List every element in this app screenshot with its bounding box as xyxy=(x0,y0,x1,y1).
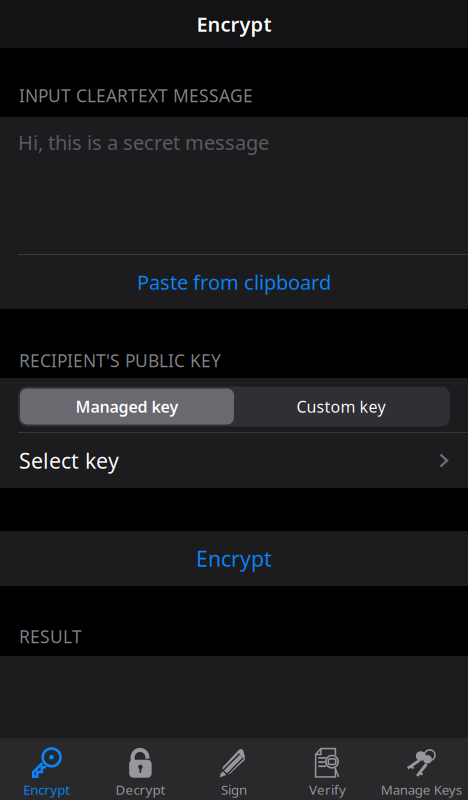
staticText: Decrypt xyxy=(115,781,165,798)
button[interactable]: Managed key xyxy=(20,388,234,424)
staticText: Paste from clipboard xyxy=(137,269,331,295)
staticText: Verify xyxy=(309,781,346,798)
button[interactable]: Manage Keys xyxy=(374,739,468,800)
staticText: Hi, this is a secret message xyxy=(18,129,269,156)
staticText: RECIPIENT'S PUBLIC KEY xyxy=(19,349,221,372)
staticText: Select key xyxy=(19,446,119,475)
staticText: Managed key xyxy=(75,396,178,417)
staticText: Encrypt xyxy=(196,544,272,573)
button[interactable]: Paste from clipboard xyxy=(0,255,468,309)
button[interactable]: Sign xyxy=(187,739,281,800)
staticText: Custom key xyxy=(296,396,385,417)
staticText: RESULT xyxy=(19,625,82,648)
button[interactable]: Verify xyxy=(281,739,374,800)
staticText: Encrypt xyxy=(23,781,70,798)
button[interactable]: Encrypt xyxy=(0,531,468,586)
staticText: Sign xyxy=(221,781,247,798)
button[interactable]: Select key xyxy=(0,433,468,488)
button[interactable]: Custom key xyxy=(234,388,448,424)
staticText: Manage Keys xyxy=(381,781,462,798)
staticText: Encrypt xyxy=(196,11,271,37)
button[interactable]: Encrypt xyxy=(0,739,94,800)
button[interactable]: Decrypt xyxy=(94,739,187,800)
staticText: INPUT CLEARTEXT MESSAGE xyxy=(19,84,253,107)
